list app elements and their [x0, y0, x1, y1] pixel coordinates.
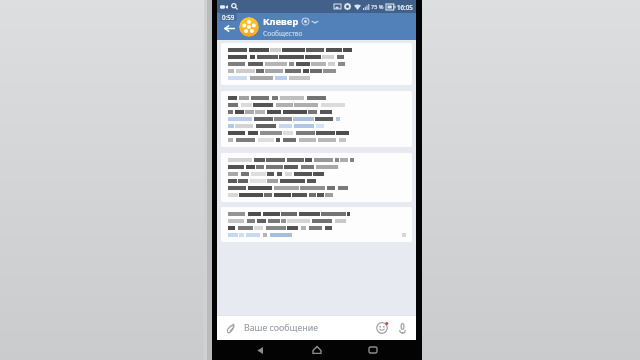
- staticText: 0:59: [222, 13, 235, 21]
- staticText: Клевер: [263, 15, 299, 28]
- staticText: 16:05: [397, 3, 413, 11]
- button[interactable]: Community avatar: [239, 17, 259, 37]
- button[interactable]: Home: [304, 341, 330, 359]
- button[interactable]: Ваше сообщение: [244, 322, 374, 334]
- button[interactable]: Attach: [223, 320, 239, 336]
- button[interactable]: Back: [247, 341, 273, 359]
- staticText: Сообщество: [263, 29, 303, 38]
- button[interactable]: [221, 43, 412, 85]
- button[interactable]: Back: [219, 13, 239, 40]
- staticText: 75 %: [371, 3, 384, 10]
- button[interactable]: Emoji: [374, 320, 390, 336]
- button[interactable]: [221, 207, 412, 242]
- button[interactable]: Recent apps: [360, 341, 386, 359]
- button[interactable]: Клевер: [263, 13, 411, 40]
- staticText: Ваше сообщение: [244, 322, 319, 334]
- button[interactable]: [221, 153, 412, 202]
- button[interactable]: [221, 91, 412, 147]
- button[interactable]: Voice message: [394, 320, 410, 336]
